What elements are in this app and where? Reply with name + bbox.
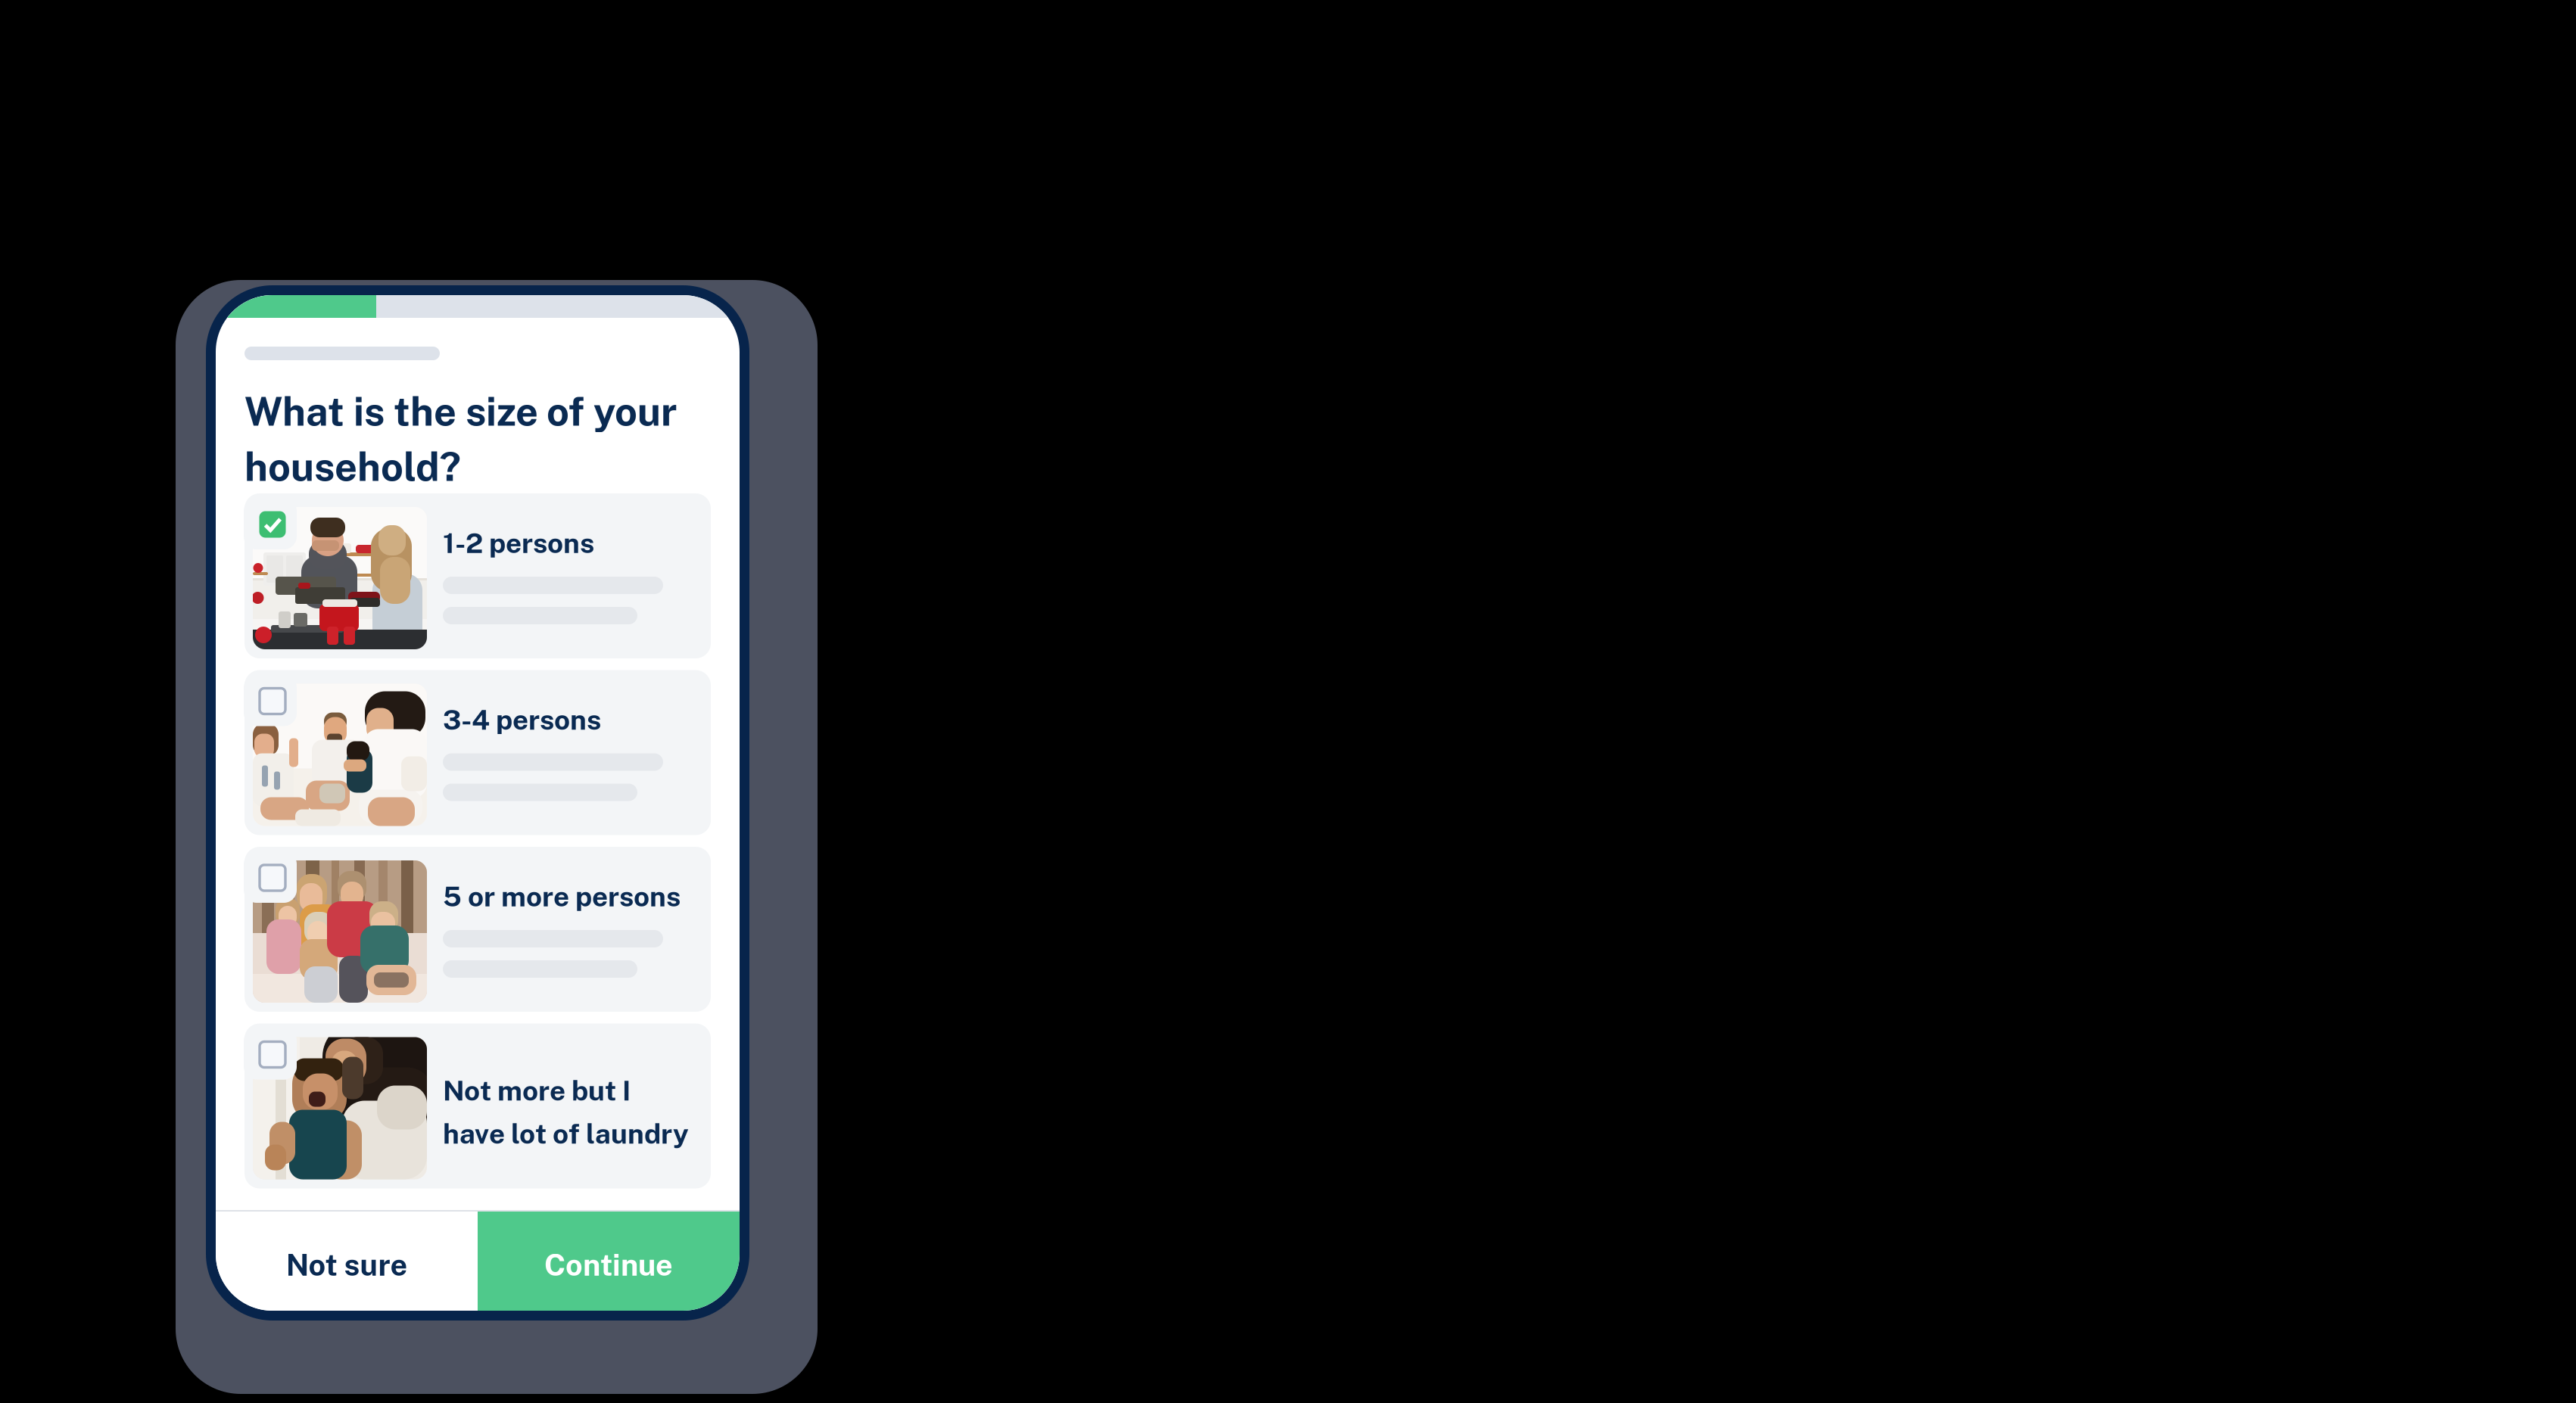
staticText: Continue <box>544 1247 673 1282</box>
staticText: 1-2 persons <box>443 527 594 559</box>
button[interactable]: Not sure <box>216 1212 478 1311</box>
button[interactable]: 3-4 persons <box>245 670 711 835</box>
button[interactable]: 1-2 persons <box>245 493 711 658</box>
staticText: 3-4 persons <box>443 703 601 736</box>
button[interactable]: Continue <box>478 1212 740 1311</box>
button[interactable]: Not more but I <box>245 1023 711 1188</box>
staticText: have lot of laundry <box>443 1117 689 1150</box>
button[interactable]: 5 or more persons <box>245 847 711 1012</box>
staticText: household? <box>245 443 461 490</box>
staticText: 5 or more persons <box>443 880 681 913</box>
staticText: Not more but I <box>443 1074 631 1107</box>
staticText: What is the size of your <box>245 388 677 434</box>
staticText: Not sure <box>286 1247 408 1282</box>
